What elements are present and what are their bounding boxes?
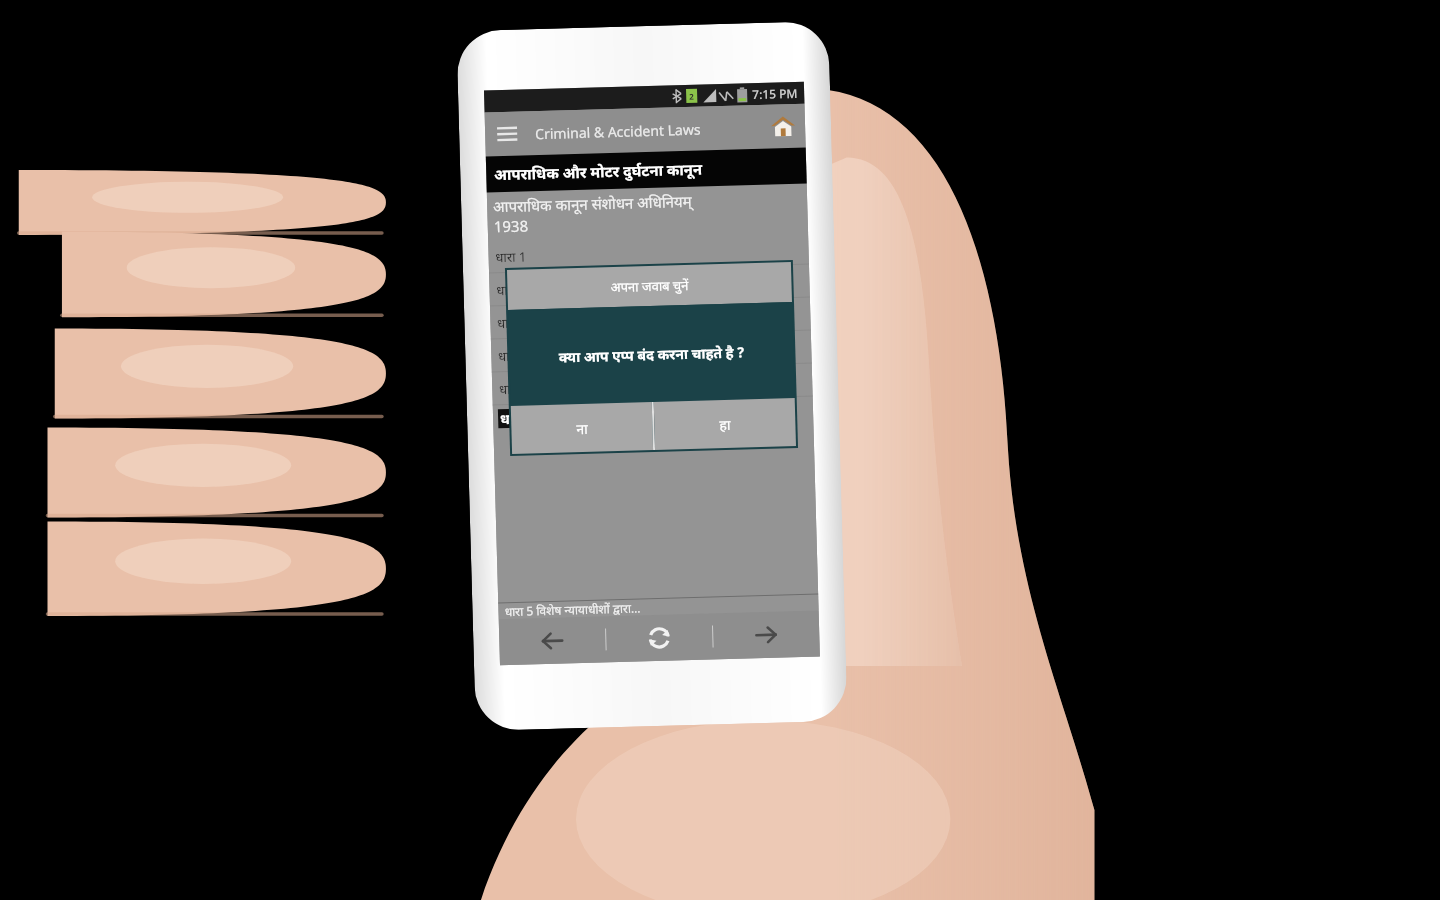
staticText: अपना जवाब चुनें	[610, 276, 689, 296]
button[interactable]: Refresh	[606, 613, 713, 662]
button[interactable]: Menu	[485, 111, 530, 156]
button[interactable]: धारा 2	[489, 265, 810, 306]
staticText: धारा 4	[491, 346, 530, 365]
button[interactable]: धारा 5	[492, 363, 813, 405]
staticText: धारा 5 विशेष न्यायाधीशों द्वारा…	[498, 599, 641, 619]
staticText: धारा 2	[489, 280, 528, 299]
staticText: धारा	[500, 409, 525, 428]
staticText: 7:15 PM	[752, 85, 798, 102]
staticText: आपराधिक और मोटर दुर्घटना कानून	[486, 158, 702, 184]
button[interactable]: Back	[499, 616, 606, 665]
button[interactable]: Home	[760, 104, 806, 149]
button[interactable]: धारा 1	[488, 232, 809, 273]
staticText: हा	[719, 415, 732, 434]
button[interactable]: हा	[654, 398, 796, 450]
staticText: 4 विशेष न्यायाधीशों द्वारा विचारण के प्र…	[527, 401, 785, 428]
button[interactable]: ना	[511, 402, 653, 454]
staticText: 2	[689, 91, 694, 102]
staticText: धारा 1	[488, 247, 527, 267]
button[interactable]: धारा 3	[490, 298, 811, 339]
staticText: Criminal & Accident Laws	[535, 119, 701, 143]
button[interactable]: धारा 4	[491, 330, 812, 372]
staticText: क्या आप एप्प बंद करना चाहते है ?	[558, 342, 745, 367]
staticText: आपराधिक कानून संशोधन अधिनियम् 1938	[493, 191, 693, 236]
staticText: ना	[576, 419, 589, 438]
staticText: धारा 3	[490, 313, 529, 332]
staticText: धारा 5	[492, 379, 531, 398]
button[interactable]: Forward	[713, 610, 820, 659]
